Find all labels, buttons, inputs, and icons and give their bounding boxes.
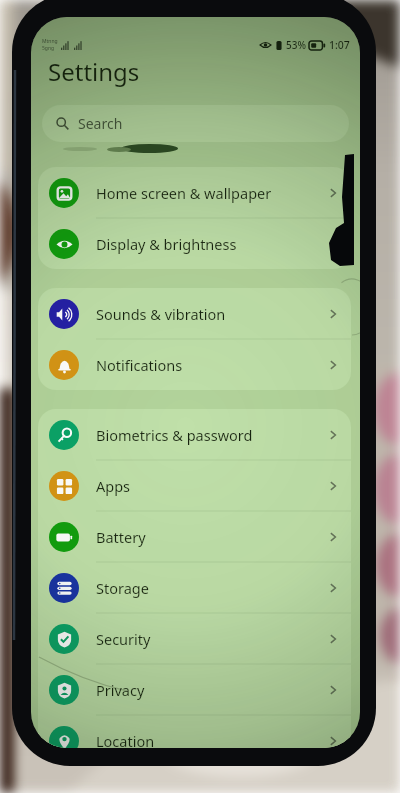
button[interactable]: Location xyxy=(38,715,351,748)
staticText: Notifications xyxy=(96,355,183,375)
staticText: Battery xyxy=(96,527,146,547)
button[interactable]: Security xyxy=(38,613,351,664)
staticText: Sounds & vibration xyxy=(96,304,226,324)
button[interactable]: Search xyxy=(42,105,349,142)
staticText: Privacy xyxy=(96,680,145,700)
button[interactable]: Storage xyxy=(38,562,351,613)
button[interactable]: Battery xyxy=(38,511,351,562)
staticText: Location xyxy=(96,731,155,748)
button[interactable]: Sounds & vibration xyxy=(38,288,351,339)
button[interactable]: Biometrics & password xyxy=(38,409,351,460)
staticText: 1:07 xyxy=(329,38,350,52)
staticText: Mtnng xyxy=(42,38,58,45)
button[interactable]: Privacy xyxy=(38,664,351,715)
staticText: 53% xyxy=(286,38,306,52)
staticText: Home screen & wallpaper xyxy=(96,183,272,203)
button[interactable]: Notifications xyxy=(38,339,351,390)
staticText: Search xyxy=(78,114,123,133)
button[interactable]: Display & brightness xyxy=(38,218,351,269)
staticText: Settings xyxy=(48,55,140,88)
staticText: Storage xyxy=(96,578,149,598)
staticText: 5gng xyxy=(42,45,55,52)
staticText: Security xyxy=(96,629,151,649)
button[interactable]: Apps xyxy=(38,460,351,511)
staticText: Apps xyxy=(96,476,131,496)
staticText: Biometrics & password xyxy=(96,425,253,445)
staticText: Display & brightness xyxy=(96,234,237,254)
button[interactable]: Home screen & wallpaper xyxy=(38,167,351,218)
